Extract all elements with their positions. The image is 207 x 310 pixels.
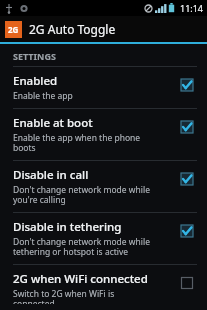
staticText: Disable in tethering — [13, 219, 122, 235]
button[interactable]: Enable at boot — [177, 117, 197, 137]
staticText: Enable the app — [13, 90, 73, 102]
button[interactable]: Disable in call — [177, 169, 197, 189]
staticText: Don't change network mode while you're c… — [13, 184, 150, 206]
button[interactable]: Enabled — [177, 75, 197, 95]
staticText: Enabled — [13, 73, 58, 89]
button[interactable]: Enable at boot — [0, 109, 207, 160]
staticText: 2G Auto Toggle — [29, 21, 116, 37]
button[interactable]: 2G when WiFi connected — [177, 273, 197, 293]
button[interactable]: Disable in tethering — [0, 213, 207, 264]
staticText: 11:14 — [180, 2, 204, 14]
button[interactable]: 2G — [0, 16, 207, 42]
button[interactable]: Disable in tethering — [177, 221, 197, 241]
staticText: 2G when WiFi connected — [13, 271, 148, 287]
button[interactable]: Disable in call — [0, 161, 207, 212]
staticText: Enable at boot — [13, 115, 93, 131]
staticText: 2G — [8, 24, 19, 35]
staticText: Disable in call — [13, 167, 89, 183]
button[interactable]: Enabled — [0, 67, 207, 108]
staticText: Enable the app when the phone boots — [13, 132, 141, 154]
staticText: Don't change network mode while tetherin… — [13, 236, 150, 258]
button[interactable]: 2G when WiFi connected — [0, 265, 207, 310]
staticText: SETTINGS — [13, 50, 56, 62]
staticText: Switch to 2G when WiFi is connected — [13, 288, 115, 304]
